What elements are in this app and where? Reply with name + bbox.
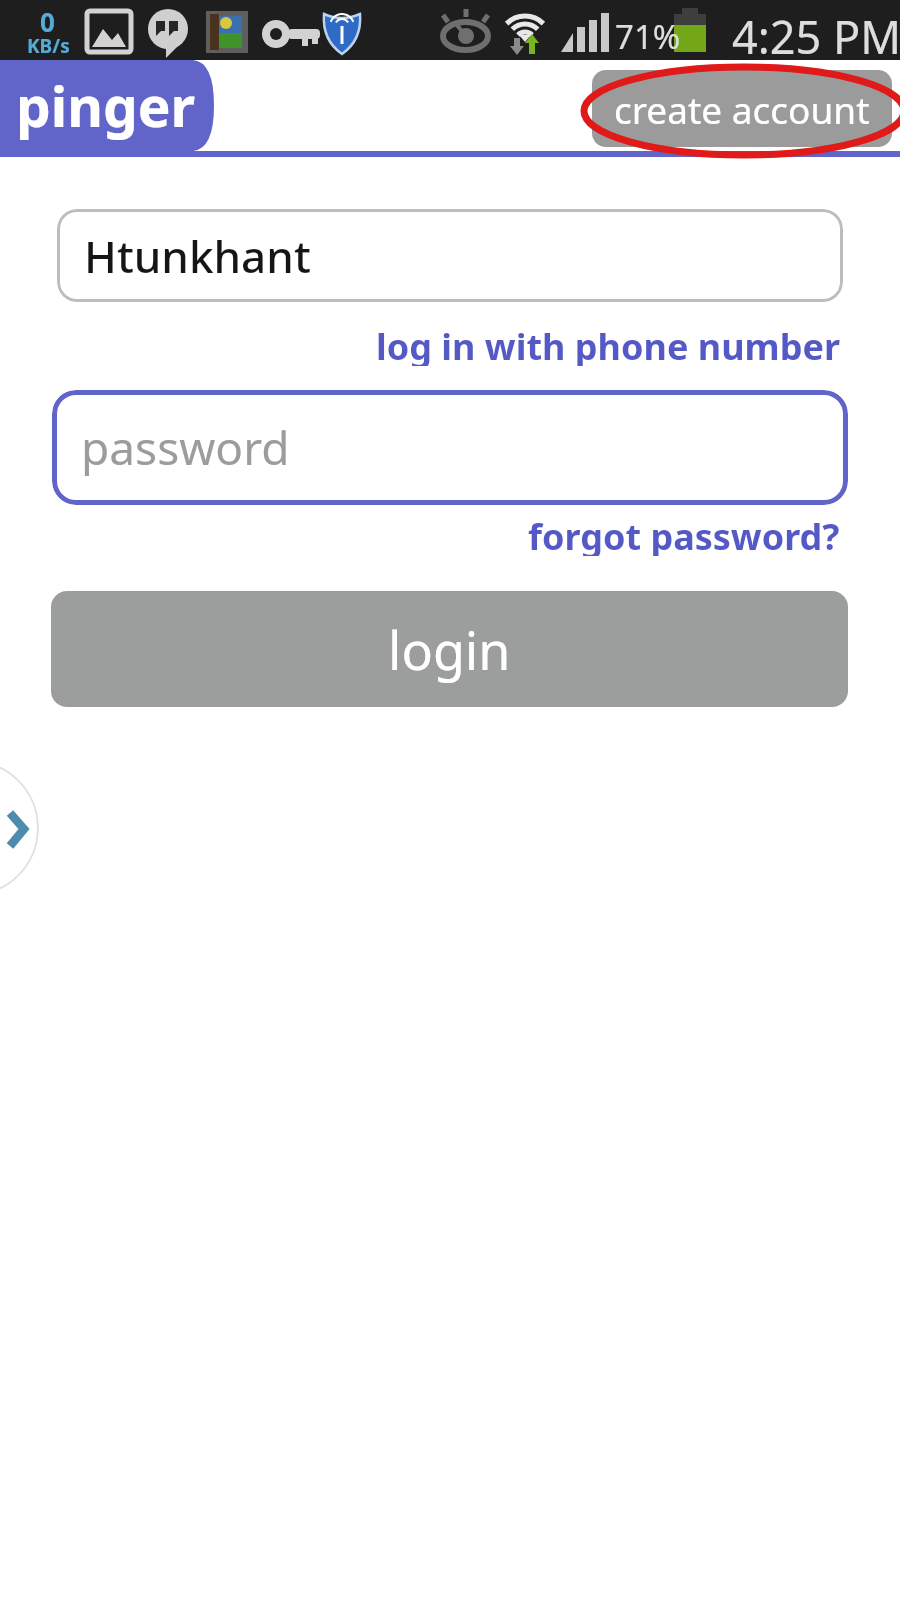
- button[interactable]: login: [51, 591, 848, 707]
- staticText: forgot password?: [528, 512, 840, 556]
- button[interactable]: [0, 760, 39, 896]
- staticText: password: [81, 416, 290, 479]
- button[interactable]: create account: [592, 70, 892, 147]
- staticText: 4:25 PM: [732, 6, 900, 67]
- button[interactable]: Htunkhant: [57, 209, 843, 302]
- staticText: login: [388, 614, 511, 685]
- staticText: Htunkhant: [84, 226, 311, 286]
- staticText: KB/s: [27, 33, 70, 59]
- staticText: 0: [40, 4, 55, 39]
- button[interactable]: log in with phone number: [376, 322, 840, 366]
- staticText: log in with phone number: [376, 322, 840, 366]
- staticText: create account: [614, 84, 870, 134]
- staticText: 71%: [615, 14, 681, 59]
- button[interactable]: forgot password?: [528, 512, 840, 556]
- button[interactable]: password: [52, 390, 848, 505]
- staticText: pinger: [16, 68, 196, 143]
